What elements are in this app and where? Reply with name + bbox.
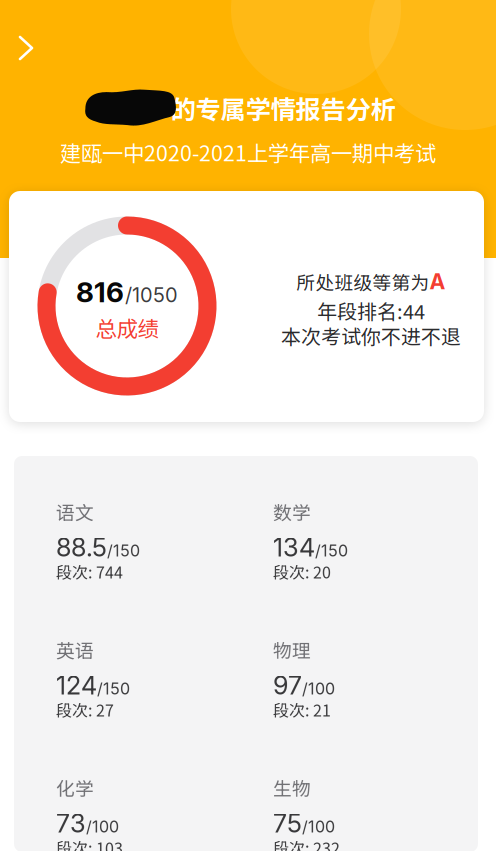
- staticText: 语文: [56, 498, 94, 525]
- staticText: 816: [76, 275, 124, 309]
- staticText: 73: [56, 808, 86, 839]
- staticText: /100: [302, 817, 335, 836]
- staticText: 124: [56, 670, 97, 701]
- staticText: 134: [273, 532, 315, 563]
- staticText: 段次: 27: [56, 698, 114, 721]
- staticText: 总成绩: [95, 312, 158, 343]
- staticText: /100: [302, 679, 335, 698]
- staticText: 年段排名:44: [317, 296, 425, 325]
- staticText: 物理: [273, 636, 311, 663]
- button[interactable]: Back: [5, 22, 47, 74]
- staticText: 段次: 744: [56, 560, 123, 583]
- staticText: 建瓯一中2020-2021上学年高一期中考试: [60, 137, 436, 167]
- staticText: /1050: [125, 283, 178, 307]
- staticText: 段次: 103: [56, 836, 123, 851]
- staticText: 段次: 232: [273, 836, 340, 851]
- staticText: /150: [97, 679, 130, 698]
- staticText: /150: [315, 541, 348, 560]
- staticText: 所处班级等第为: [296, 268, 429, 295]
- staticText: /150: [107, 541, 140, 560]
- staticText: 97: [273, 670, 302, 701]
- staticText: 数学: [273, 498, 311, 525]
- staticText: A: [429, 269, 445, 294]
- staticText: 英语: [56, 636, 94, 663]
- staticText: /100: [86, 817, 119, 836]
- staticText: 本次考试你不进不退: [281, 321, 461, 350]
- staticText: 生物: [273, 774, 311, 801]
- staticText: 段次: 21: [273, 698, 331, 721]
- staticText: 化学: [56, 774, 94, 801]
- staticText: 75: [273, 808, 302, 839]
- staticText: 段次: 20: [273, 560, 331, 583]
- staticText: 的专属学情报告分析: [170, 90, 395, 126]
- staticText: 88.5: [56, 532, 107, 563]
